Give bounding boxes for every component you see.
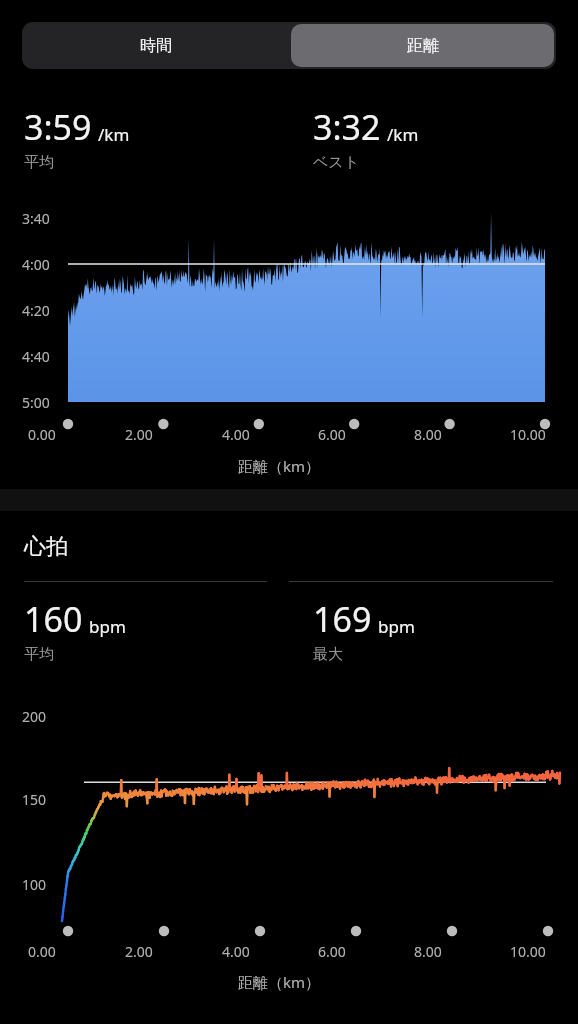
staticText: 4:20 <box>22 301 50 320</box>
button[interactable]: 時間 <box>22 22 289 69</box>
staticText: ベスト <box>313 153 360 172</box>
staticText: 100 <box>22 875 47 894</box>
staticText: 距離（km） <box>238 456 321 476</box>
button[interactable]: 3:40 <box>0 194 578 479</box>
staticText: 最大 <box>313 645 343 664</box>
staticText: 距離（km） <box>238 972 321 992</box>
staticText: /km <box>98 123 130 146</box>
staticText: 5:00 <box>22 393 50 412</box>
staticText: /km <box>387 123 419 146</box>
staticText: 0.00 <box>28 942 56 961</box>
staticText: 4.00 <box>222 425 250 444</box>
staticText: 10.00 <box>510 942 546 961</box>
button[interactable]: 200 <box>0 690 578 990</box>
staticText: 169 <box>313 596 372 642</box>
staticText: 160 <box>24 596 83 642</box>
staticText: 平均 <box>24 153 54 172</box>
staticText: 3:32 <box>313 104 381 150</box>
staticText: 3:59 <box>24 104 92 150</box>
staticText: 3:40 <box>22 209 50 228</box>
staticText: 距離 <box>407 36 439 56</box>
staticText: 200 <box>22 707 47 726</box>
staticText: 4:40 <box>22 347 50 366</box>
staticText: 6.00 <box>318 425 346 444</box>
staticText: 時間 <box>140 36 172 56</box>
staticText: 8.00 <box>414 942 442 961</box>
staticText: 4:00 <box>22 255 50 274</box>
staticText: 10.00 <box>510 425 546 444</box>
staticText: 平均 <box>24 645 54 664</box>
staticText: 2.00 <box>125 425 153 444</box>
staticText: 0.00 <box>28 425 56 444</box>
staticText: bpm <box>89 615 126 638</box>
button[interactable]: 距離 <box>291 24 554 67</box>
staticText: 2.00 <box>125 942 153 961</box>
staticText: 心拍 <box>24 533 68 561</box>
staticText: 150 <box>22 790 47 809</box>
staticText: 6.00 <box>318 942 346 961</box>
staticText: bpm <box>378 615 415 638</box>
staticText: 8.00 <box>414 425 442 444</box>
staticText: 4.00 <box>222 942 250 961</box>
